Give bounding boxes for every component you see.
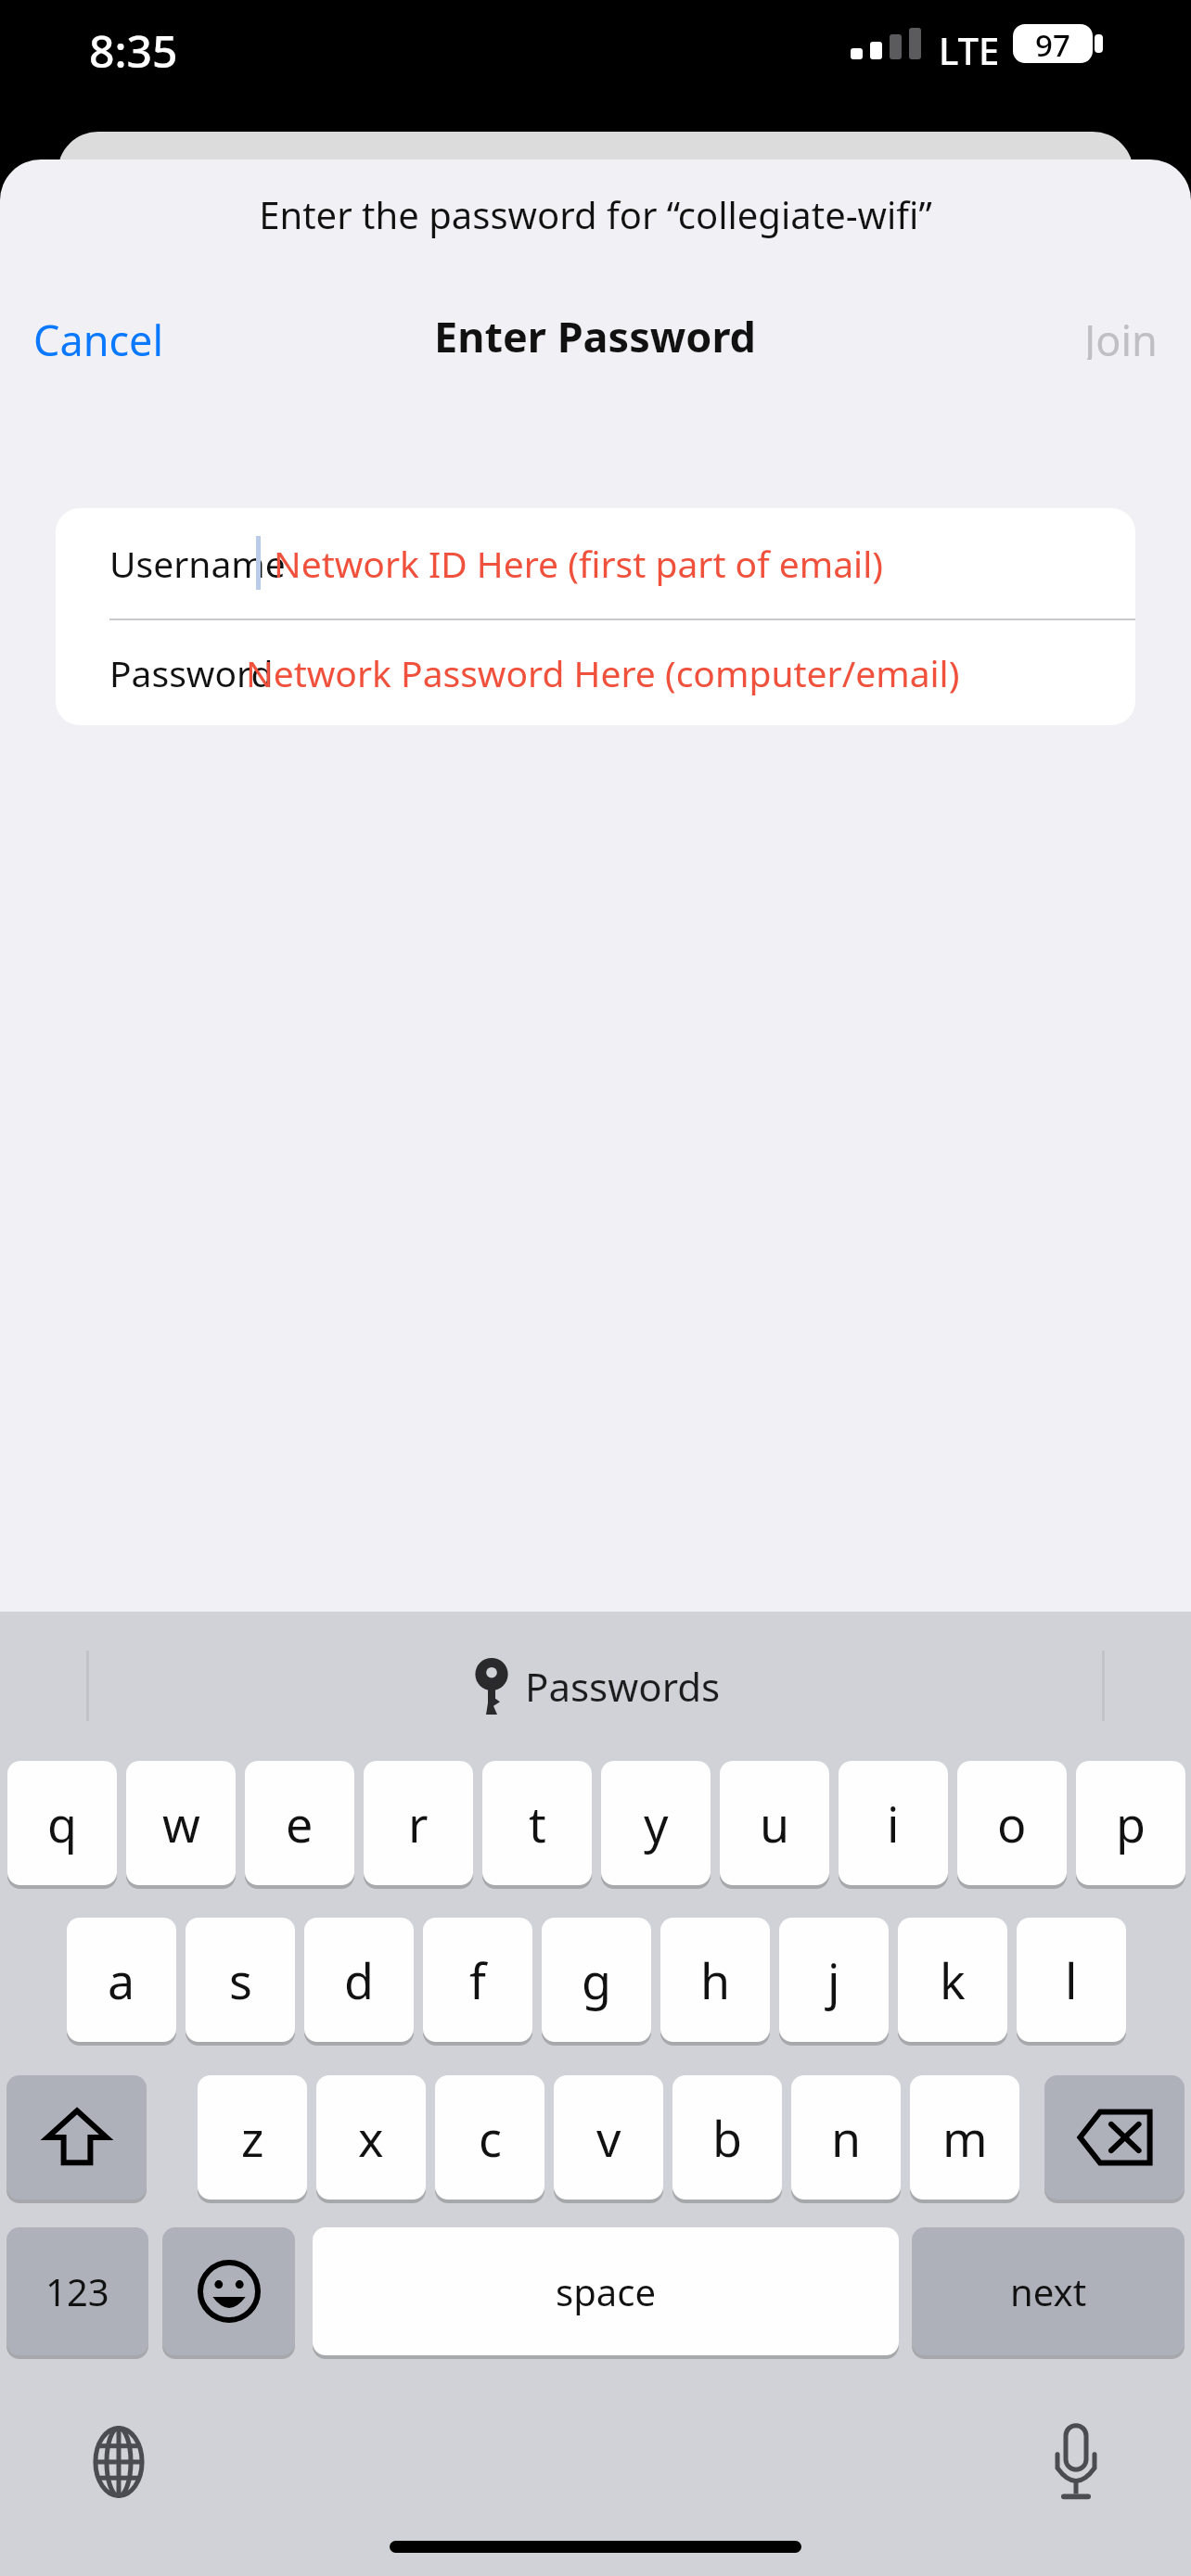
staticText: space (556, 2266, 656, 2316)
button[interactable]: Cancel (0, 300, 198, 371)
button[interactable]: n (791, 2075, 901, 2200)
staticText: e (286, 1791, 314, 1856)
staticText: o (997, 1791, 1027, 1856)
staticText: x (358, 2105, 384, 2171)
staticText: 123 (45, 2266, 109, 2316)
staticText: Network ID Here (first part of email) (274, 539, 883, 588)
button[interactable]: b (672, 2075, 782, 2200)
button[interactable]: o (957, 1761, 1067, 1885)
button[interactable]: v (554, 2075, 663, 2200)
button[interactable]: f (423, 1918, 532, 2042)
button[interactable]: c (435, 2075, 544, 2200)
staticText: f (469, 1947, 486, 2013)
button[interactable]: e (245, 1761, 354, 1885)
button[interactable]: Join (1051, 300, 1191, 371)
staticText: v (596, 2105, 621, 2171)
staticText: a (108, 1947, 135, 2013)
button[interactable]: j (779, 1918, 889, 2042)
button[interactable]: Backspace (1044, 2075, 1185, 2200)
staticText: Network Password Here (computer/email) (246, 648, 960, 697)
staticText: q (47, 1791, 77, 1856)
button[interactable]: Dictation (1035, 2421, 1117, 2503)
button[interactable]: Switch keyboard language (78, 2421, 160, 2503)
staticText: 8:35 (89, 20, 178, 81)
staticText: i (887, 1791, 900, 1856)
staticText: m (942, 2105, 988, 2171)
button[interactable]: next (912, 2227, 1185, 2355)
staticText: Cancel (33, 312, 164, 360)
staticText: Username (109, 539, 286, 588)
staticText: next (1010, 2266, 1087, 2316)
staticText: t (529, 1791, 546, 1856)
staticText: 97 (1035, 24, 1070, 63)
button[interactable]: u (720, 1761, 829, 1885)
button[interactable]: k (898, 1918, 1007, 2042)
button[interactable]: m (910, 2075, 1019, 2200)
staticText: c (479, 2105, 502, 2171)
staticText: j (827, 1947, 840, 2013)
staticText: w (162, 1791, 200, 1856)
staticText: s (229, 1947, 252, 2013)
staticText: p (1116, 1791, 1146, 1856)
staticText: r (408, 1791, 429, 1856)
button[interactable]: d (304, 1918, 414, 2042)
button[interactable]: 123 (6, 2227, 148, 2355)
button[interactable]: Emoji (162, 2227, 295, 2355)
staticText: l (1065, 1947, 1078, 2013)
staticText: y (644, 1791, 669, 1856)
button[interactable]: i (839, 1761, 948, 1885)
staticText: Enter the password for “collegiate-wifi” (0, 189, 1191, 239)
button[interactable]: p (1076, 1761, 1185, 1885)
button[interactable]: g (542, 1918, 651, 2042)
button[interactable]: Passwords (471, 1657, 721, 1715)
staticText: Password (109, 648, 274, 697)
staticText: LTE (939, 25, 1000, 75)
button[interactable]: r (364, 1761, 473, 1885)
staticText: k (940, 1947, 966, 2013)
button[interactable]: y (601, 1761, 711, 1885)
staticText: Join (1084, 312, 1158, 360)
button[interactable]: l (1017, 1918, 1126, 2042)
button[interactable]: a (67, 1918, 176, 2042)
button[interactable]: x (316, 2075, 426, 2200)
staticText: g (582, 1947, 611, 2013)
staticText: z (241, 2105, 264, 2171)
button[interactable]: Shift (6, 2075, 147, 2200)
button[interactable]: h (660, 1918, 770, 2042)
staticText: u (760, 1791, 790, 1856)
staticText: Passwords (525, 1660, 721, 1713)
button[interactable]: t (482, 1761, 592, 1885)
button[interactable]: Username (56, 508, 1135, 618)
button[interactable]: Password (56, 620, 1135, 725)
button[interactable]: w (126, 1761, 236, 1885)
staticText: b (712, 2105, 742, 2171)
button[interactable]: z (198, 2075, 307, 2200)
staticText: n (831, 2105, 862, 2171)
button[interactable]: space (313, 2227, 899, 2355)
staticText: Enter Password (434, 308, 757, 364)
button[interactable]: s (186, 1918, 295, 2042)
staticText: h (700, 1947, 731, 2013)
staticText: d (344, 1947, 374, 2013)
button[interactable]: q (7, 1761, 117, 1885)
